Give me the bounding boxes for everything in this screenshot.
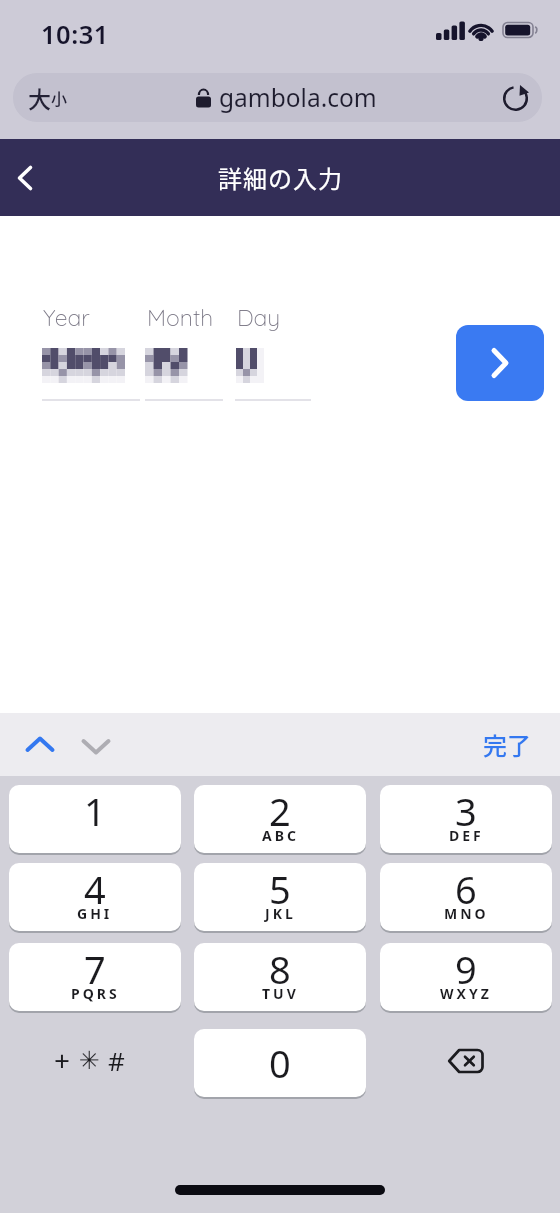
staticText: Day: [237, 303, 281, 332]
staticText: ABC: [262, 826, 299, 845]
button[interactable]: 0: [194, 1029, 366, 1097]
staticText: gambola.com: [219, 81, 377, 114]
button[interactable]: 8: [194, 943, 366, 1011]
staticText: #: [108, 1043, 125, 1078]
staticText: DEF: [449, 826, 484, 845]
button[interactable]: 7: [9, 943, 181, 1011]
staticText: 10:31: [41, 17, 109, 52]
staticText: TUV: [262, 984, 299, 1003]
staticText: GHI: [77, 904, 113, 923]
staticText: 7: [84, 943, 106, 995]
staticText: WXYZ: [440, 984, 492, 1003]
staticText: 8: [269, 943, 291, 995]
staticText: 1: [84, 785, 106, 837]
button[interactable]: 1: [9, 785, 181, 853]
staticText: 0: [269, 1037, 291, 1089]
button[interactable]: 4: [9, 863, 181, 931]
button[interactable]: 3: [380, 785, 552, 853]
staticText: +: [54, 1041, 71, 1079]
staticText: 9: [455, 943, 477, 995]
staticText: 詳細の入力: [218, 160, 343, 195]
button[interactable]: [380, 1029, 552, 1097]
button[interactable]: [42, 300, 140, 404]
button[interactable]: 大: [13, 73, 542, 122]
button[interactable]: [18, 166, 32, 190]
button[interactable]: [26, 737, 54, 753]
staticText: 5: [269, 863, 291, 915]
staticText: 3: [455, 785, 477, 837]
staticText: 大: [28, 81, 51, 114]
staticText: 小: [51, 86, 68, 109]
button[interactable]: 完了: [483, 727, 531, 762]
button[interactable]: +: [9, 1029, 181, 1097]
button[interactable]: 6: [380, 863, 552, 931]
staticText: PQRS: [71, 984, 120, 1003]
staticText: 6: [455, 863, 477, 915]
staticText: 2: [269, 785, 291, 837]
staticText: ✳: [79, 1046, 100, 1075]
staticText: MNO: [444, 904, 489, 923]
button[interactable]: 9: [380, 943, 552, 1011]
staticText: JKL: [265, 904, 296, 923]
staticText: Month: [147, 303, 214, 332]
button[interactable]: [235, 300, 311, 404]
staticText: 4: [84, 863, 106, 915]
button[interactable]: 2: [194, 785, 366, 853]
button[interactable]: [82, 739, 110, 755]
staticText: Year: [43, 303, 90, 332]
button[interactable]: 5: [194, 863, 366, 931]
button[interactable]: [145, 300, 223, 404]
button[interactable]: [456, 325, 544, 401]
